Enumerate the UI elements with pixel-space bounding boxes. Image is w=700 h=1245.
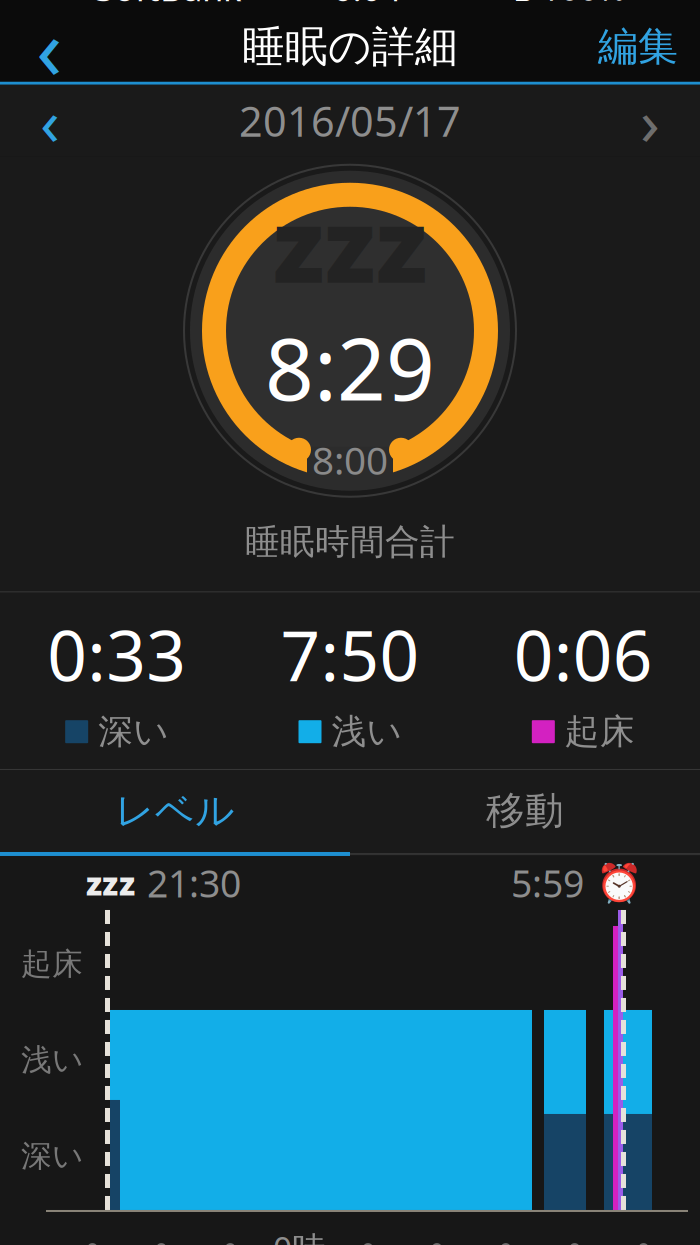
staticText: ‹	[40, 78, 60, 163]
staticText: 深い	[98, 710, 168, 753]
staticText: zᴢz	[86, 862, 135, 904]
button[interactable]: 移動	[350, 770, 700, 852]
staticText: 浅い	[331, 710, 401, 753]
staticText: 起床	[565, 710, 635, 753]
staticText: zᴢz	[273, 176, 427, 311]
staticText: 浅い	[21, 1041, 83, 1079]
staticText: 0時	[273, 1226, 325, 1245]
button[interactable]: Next day	[610, 86, 690, 156]
staticText: 編集	[598, 22, 678, 71]
staticText: 100%	[541, 0, 626, 10]
staticText: 起床	[21, 945, 83, 983]
button[interactable]: Back	[12, 9, 86, 85]
staticText: 6:04	[332, 0, 401, 11]
button[interactable]: レベル	[0, 770, 350, 852]
staticText: 0:33	[47, 608, 186, 700]
staticText: 移動	[486, 787, 564, 835]
staticText: ʙ	[513, 0, 533, 11]
staticText: 深い	[21, 1137, 83, 1175]
staticText: 睡眠の詳細	[242, 20, 458, 73]
button[interactable]: Previous day	[10, 86, 90, 156]
staticText: 睡眠時間合計	[245, 521, 455, 563]
button[interactable]: 編集	[588, 9, 688, 85]
staticText: ›	[640, 78, 660, 163]
staticText: SoftBank	[95, 0, 242, 11]
staticText: 0:06	[514, 608, 653, 700]
staticText: 2016/05/17	[239, 93, 461, 148]
staticText: 21:30	[147, 858, 241, 908]
staticText: ⏰	[596, 862, 642, 904]
staticText: 8:00	[312, 434, 388, 485]
staticText: レベル	[115, 787, 235, 835]
staticText: 7:50	[280, 608, 419, 700]
staticText: 8:29	[265, 311, 435, 424]
staticText: 5:59	[511, 858, 584, 908]
staticText: ‹	[36, 0, 62, 103]
